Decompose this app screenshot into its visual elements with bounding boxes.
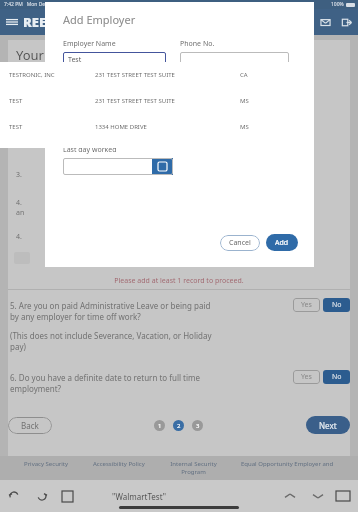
staticText: Yes — [301, 372, 312, 382]
button[interactable]: No — [323, 298, 350, 312]
button[interactable]: Yes — [293, 298, 320, 312]
button[interactable]: Add — [266, 234, 298, 251]
button[interactable]: Redo — [36, 490, 48, 502]
staticText: No — [332, 300, 342, 310]
staticText: Mississippi — [67, 122, 103, 132]
button[interactable]: TEST — [0, 121, 310, 133]
staticText: 7:42 PM Mon Dec 6 — [4, 1, 52, 8]
staticText: 5. Are you on paid Administrative Leave … — [10, 300, 293, 322]
staticText: Please add at least 1 record to proceed. — [8, 276, 350, 286]
staticText: 231 TEST STREET TEST SUITE — [95, 97, 240, 105]
staticText: Privacy Security — [24, 460, 69, 468]
other: Pick date — [152, 158, 173, 175]
button[interactable]: Undo — [8, 490, 20, 502]
staticText: Employer Name — [63, 39, 116, 49]
button[interactable]: Clipboard — [62, 491, 73, 502]
staticText: 3. — [16, 170, 22, 180]
staticText: Test — [68, 55, 82, 65]
button[interactable]: Test — [63, 52, 166, 68]
button[interactable]: --Select Status-- — [201, 119, 293, 135]
staticText: Internal Security Program — [170, 460, 217, 476]
button[interactable]: Keyboard — [336, 491, 350, 501]
staticText: No — [332, 372, 342, 382]
staticText: Accessibility Policy — [93, 460, 145, 468]
button[interactable]: 1 — [154, 420, 165, 431]
staticText: 100% — [331, 1, 344, 8]
button[interactable]: 2 — [173, 420, 184, 431]
button[interactable]: TEST — [0, 95, 310, 107]
staticText: TEST — [9, 123, 95, 131]
staticText: Add — [275, 238, 289, 248]
staticText: Back — [21, 420, 39, 431]
staticText: TEST — [9, 97, 95, 105]
button[interactable]: Log out — [340, 16, 353, 29]
button[interactable]: Yes — [293, 370, 320, 384]
staticText: (This does not include Severance, Vacati… — [10, 330, 212, 352]
staticText: "WalmartTest" — [112, 491, 166, 502]
staticText: Yes — [301, 300, 312, 310]
button[interactable]: No — [323, 370, 350, 384]
staticText: --Select Status-- — [206, 122, 257, 132]
staticText: 2 — [177, 422, 181, 430]
button[interactable]: Menu — [6, 16, 18, 28]
button[interactable]: Back — [8, 417, 52, 434]
staticText: MS — [240, 123, 249, 131]
button[interactable]: Previous — [284, 490, 296, 502]
staticText: Phone No. — [180, 39, 215, 49]
staticText: Equal Opportunity Employer and — [241, 460, 334, 468]
button[interactable]: Messages — [319, 16, 332, 29]
staticText: 1334 HOME DRIVE — [95, 123, 240, 131]
button[interactable]: 3 — [192, 420, 203, 431]
button[interactable]: Mississippi — [63, 119, 123, 135]
staticText: MS — [240, 97, 249, 105]
button[interactable]: TESTRONIC, INC — [0, 69, 310, 81]
staticText: 4. — [16, 232, 22, 242]
staticText: Add Employer — [63, 12, 136, 27]
staticText: REED — [23, 13, 56, 31]
staticText: 1 — [158, 422, 162, 430]
staticText: TESTRONIC, INC — [9, 71, 95, 79]
button[interactable]: Cancel — [220, 235, 260, 251]
button[interactable]: Next — [306, 416, 350, 434]
button[interactable]: Next — [312, 490, 324, 502]
staticText: CA — [240, 71, 248, 79]
staticText: 4. an — [16, 198, 25, 218]
button[interactable] — [180, 52, 289, 68]
button[interactable]: Pick date — [63, 158, 173, 175]
staticText: Last day worked — [63, 145, 117, 155]
staticText: 3 — [196, 422, 200, 430]
staticText: Next — [319, 420, 337, 431]
staticText: Cancel — [229, 238, 251, 248]
staticText: Your 11 — [16, 46, 63, 64]
button[interactable] — [132, 119, 170, 135]
staticText: 6. Do you have a definite date to return… — [10, 372, 293, 394]
staticText: 231 TEST STREET TEST SUITE — [95, 71, 240, 79]
